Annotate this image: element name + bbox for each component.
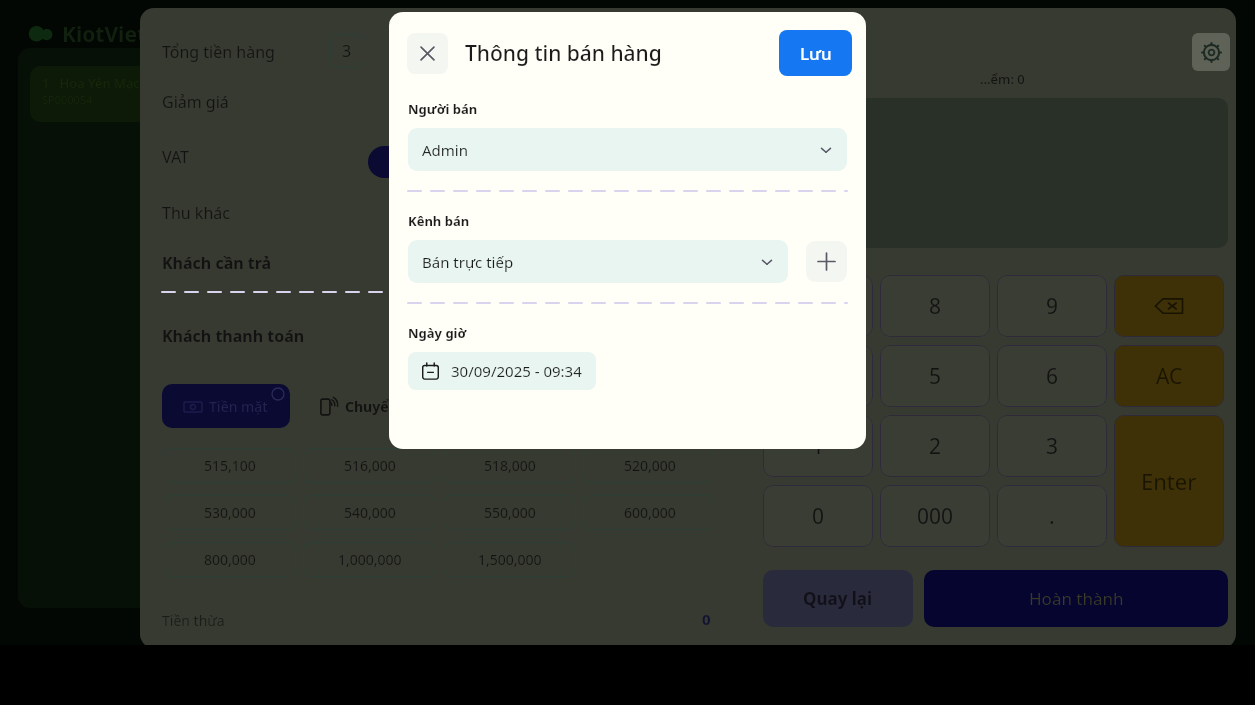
button[interactable]: Quay lại — [763, 570, 913, 627]
staticText: KiotViet — [62, 20, 147, 49]
staticText: Hoàn thành — [1029, 587, 1124, 610]
staticText: Bán trực tiếp — [422, 252, 514, 272]
staticText: 1 Hoa Yến Mạc — [42, 74, 140, 92]
staticText: 550,000 — [484, 503, 536, 522]
staticText: 540,000 — [344, 503, 396, 522]
staticText: 3 — [342, 40, 352, 62]
button[interactable]: 530,000 — [163, 495, 296, 530]
staticText: Người bán — [408, 100, 478, 118]
staticText: 1 — [812, 432, 825, 461]
button[interactable]: 600,000 — [583, 495, 716, 530]
staticText: Giảm giá — [162, 91, 229, 113]
button[interactable]: AC — [1114, 345, 1224, 407]
button[interactable]: 1,000,000 — [303, 542, 436, 577]
button[interactable]: Close — [407, 33, 448, 74]
button[interactable]: Settings — [1192, 33, 1230, 71]
button[interactable]: 3 — [997, 415, 1107, 477]
staticText: Ngày giờ — [408, 324, 467, 342]
button[interactable]: 9 — [997, 275, 1107, 337]
button[interactable]: Add sales channel — [806, 241, 847, 282]
staticText: 7 — [812, 292, 825, 321]
staticText: Tổng tiền hàng — [162, 41, 275, 63]
button[interactable]: 516,000 — [303, 448, 436, 483]
staticText: AC — [1156, 362, 1183, 391]
staticText: Khách thanh toán — [162, 325, 305, 347]
button[interactable]: 7 — [763, 275, 873, 337]
staticText: Kênh bán — [408, 212, 470, 230]
button[interactable]: 3 — [330, 34, 364, 68]
staticText: 515,100 — [204, 456, 256, 475]
button[interactable]: 550,000 — [443, 495, 576, 530]
staticText: Lưu — [800, 42, 832, 65]
staticText: 1,000,000 — [338, 550, 402, 569]
staticText: ...ểm: 0 — [980, 70, 1025, 88]
button[interactable]: 515,100 — [163, 448, 296, 483]
staticText: 520,000 — [624, 456, 676, 475]
staticText: Tiền thừa — [162, 611, 225, 630]
button[interactable]: Hoàn thành — [924, 570, 1228, 627]
staticText: 9 — [1046, 292, 1059, 321]
staticText: 5 — [929, 362, 942, 391]
staticText: 516,000 — [344, 456, 396, 475]
staticText: Thông tin bán hàng — [465, 39, 662, 68]
staticText: Chuyển — [345, 397, 398, 416]
staticText: 518,000 — [484, 456, 536, 475]
button[interactable]: . — [997, 485, 1107, 547]
staticText: 600,000 — [624, 503, 676, 522]
button[interactable]: 800,000 — [163, 542, 296, 577]
staticText: 800,000 — [204, 550, 256, 569]
button[interactable]: Admin — [408, 128, 847, 171]
button[interactable]: Chuyển — [320, 397, 398, 416]
button[interactable]: Backspace — [1114, 275, 1224, 337]
button[interactable]: 520,000 — [583, 448, 716, 483]
button[interactable]: 518,000 — [443, 448, 576, 483]
button[interactable]: Lưu — [779, 30, 852, 76]
button[interactable]: 1,500,000 — [443, 542, 576, 577]
button[interactable]: 0 — [763, 485, 873, 547]
button[interactable]: 000 — [880, 485, 990, 547]
staticText: Thu khác — [162, 202, 230, 224]
staticText: 530,000 — [204, 503, 256, 522]
staticText: 1,500,000 — [478, 550, 542, 569]
staticText: 0 — [702, 609, 711, 629]
button[interactable]: Enter — [1114, 415, 1224, 547]
staticText: . — [1049, 502, 1055, 531]
staticText: Tiền mặt — [209, 397, 268, 416]
button[interactable]: Bán trực tiếp — [408, 240, 788, 283]
button[interactable]: 6 — [997, 345, 1107, 407]
staticText: SP000054 — [42, 92, 93, 107]
staticText: 000 — [917, 502, 954, 531]
staticText: Enter — [1141, 466, 1197, 496]
staticText: 30/09/2025 - 09:34 — [451, 361, 582, 381]
button[interactable]: 2 — [880, 415, 990, 477]
staticText: VAT — [162, 146, 189, 168]
button[interactable]: 1 — [763, 415, 873, 477]
button[interactable]: Tiền mặt — [162, 384, 290, 428]
button[interactable]: 4 — [763, 345, 873, 407]
staticText: Quay lại — [803, 587, 873, 610]
button[interactable]: 8 — [880, 275, 990, 337]
button[interactable] — [768, 98, 1228, 248]
staticText: 2 — [929, 432, 942, 461]
staticText: Khách cần trả — [162, 252, 272, 274]
staticText: 6 — [1046, 362, 1059, 391]
staticText: 8 — [929, 292, 942, 321]
button[interactable]: 5 — [880, 345, 990, 407]
staticText: 3 — [1046, 432, 1059, 461]
button[interactable]: 30/09/2025 - 09:34 — [408, 352, 596, 390]
staticText: Admin — [422, 140, 468, 160]
staticText: 0 — [812, 502, 825, 531]
button[interactable]: 540,000 — [303, 495, 436, 530]
